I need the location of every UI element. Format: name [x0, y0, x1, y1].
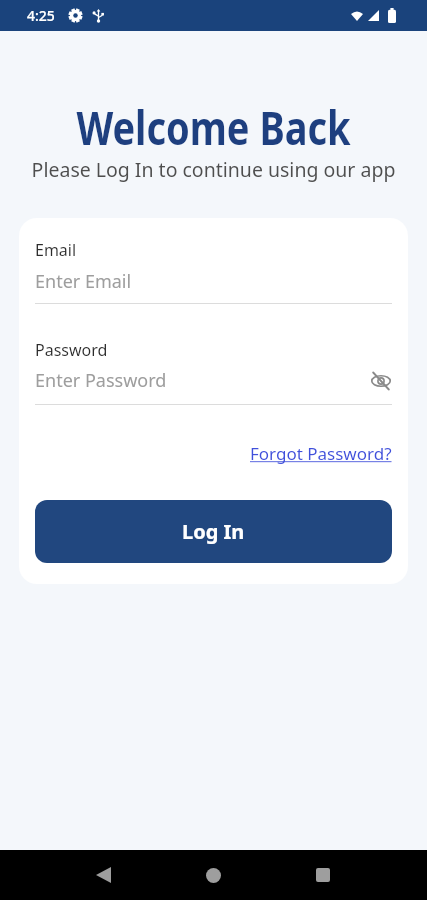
button[interactable]: Enter Password — [35, 368, 392, 393]
staticText: Log In — [182, 518, 245, 545]
button[interactable]: Enter Email — [35, 269, 392, 294]
staticText: Forgot Password? — [250, 442, 392, 465]
staticText: Enter Email — [35, 269, 132, 294]
staticText: Enter Password — [35, 368, 167, 393]
staticText: Welcome Back — [0, 95, 427, 159]
button[interactable] — [189, 851, 237, 899]
staticText: 4:25 — [27, 6, 55, 25]
button[interactable] — [79, 851, 127, 899]
button[interactable]: Log In — [35, 500, 392, 563]
button[interactable]: Forgot Password? — [250, 442, 392, 465]
button[interactable] — [299, 851, 347, 899]
staticText: Email — [35, 239, 77, 261]
staticText: Please Log In to continue using our app — [0, 156, 427, 183]
staticText: Password — [35, 339, 108, 361]
button[interactable] — [370, 370, 392, 392]
